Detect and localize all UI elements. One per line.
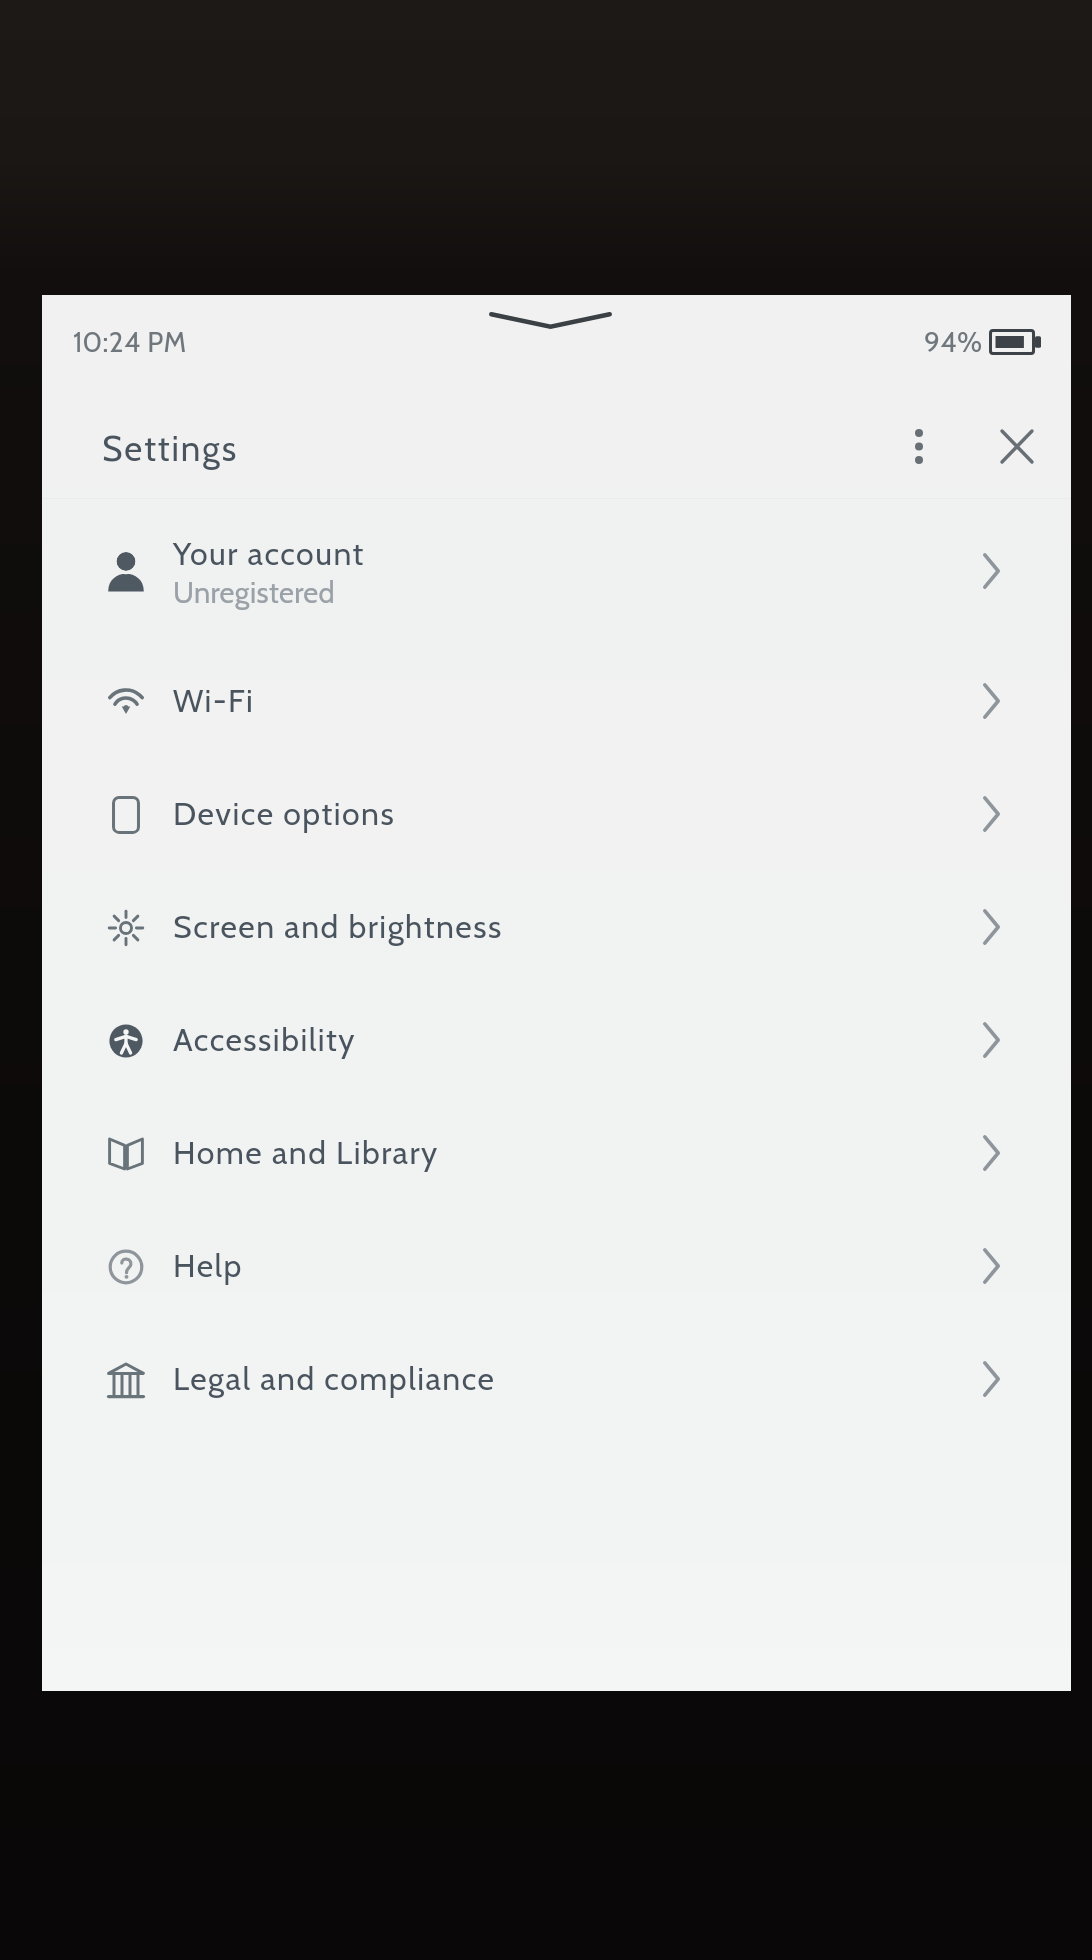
staticText: Help <box>173 1246 243 1285</box>
staticText: Wi-Fi <box>173 681 255 720</box>
button[interactable]: Open quick settings <box>469 295 632 359</box>
staticText: Settings <box>102 427 239 470</box>
staticText: Device options <box>173 794 396 833</box>
staticText: Screen and brightness <box>173 907 503 946</box>
staticText: 10:24 PM <box>73 325 187 359</box>
button[interactable]: Help <box>42 1210 1071 1323</box>
button[interactable]: More options <box>879 406 959 486</box>
button[interactable]: Accessibility <box>42 984 1071 1097</box>
staticText: Your account <box>173 534 365 573</box>
button[interactable]: Your account <box>42 515 1071 628</box>
button[interactable]: Close <box>973 402 1061 490</box>
staticText: Accessibility <box>173 1020 356 1059</box>
button[interactable]: Home and Library <box>42 1097 1071 1210</box>
button[interactable]: Device options <box>42 758 1071 871</box>
button[interactable]: Screen and brightness <box>42 871 1071 984</box>
staticText: 94% <box>924 325 983 359</box>
button[interactable]: Legal and compliance <box>42 1323 1071 1436</box>
staticText: Legal and compliance <box>173 1359 496 1398</box>
button[interactable]: Wi-Fi <box>42 645 1071 758</box>
staticText: Home and Library <box>173 1133 439 1172</box>
staticText: Unregistered <box>173 575 335 610</box>
